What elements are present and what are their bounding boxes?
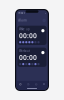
button[interactable]: Toggle alarm [41, 49, 45, 54]
staticText: Alarm [18, 19, 27, 22]
staticText: ☰ [43, 82, 45, 85]
button[interactable]: Day [22, 41, 24, 43]
button[interactable]: Day [28, 41, 30, 43]
staticText: ◵ [35, 82, 37, 85]
staticText: ◴ [19, 82, 21, 85]
staticText: 00:00 [19, 53, 37, 62]
button[interactable]: Day [31, 41, 33, 43]
button[interactable]: Day [25, 41, 27, 43]
staticText: ıl ▮ [45, 12, 46, 14]
button[interactable]: Day [37, 63, 40, 65]
button[interactable]: Day [34, 41, 37, 43]
staticText: 00:00 [19, 31, 37, 40]
button[interactable]: Stopwatch [32, 81, 40, 87]
staticText: Wake up [19, 27, 30, 31]
button[interactable]: Timer [24, 81, 32, 87]
staticText: ◷ [27, 82, 29, 85]
button[interactable]: More [40, 81, 48, 87]
button[interactable]: Add alarm [42, 19, 46, 22]
staticText: 9:41 [18, 11, 25, 15]
button[interactable]: Toggle alarm [41, 27, 45, 32]
button[interactable]: Day [37, 41, 40, 43]
button[interactable]: Day [19, 41, 21, 43]
button[interactable]: Day [28, 63, 30, 65]
button[interactable]: Day [25, 63, 27, 65]
button[interactable]: Day [22, 63, 24, 65]
button[interactable]: Day [31, 63, 33, 65]
button[interactable]: Day [19, 63, 21, 65]
staticText: Workout [19, 49, 30, 53]
button[interactable]: Day [34, 63, 37, 65]
button[interactable]: Alarm [16, 81, 24, 87]
